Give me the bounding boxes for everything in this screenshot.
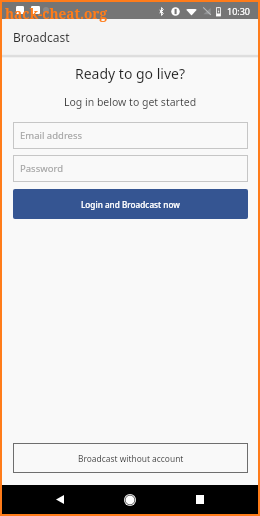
staticText: 10:30 (227, 5, 251, 17)
button[interactable]: Password (13, 155, 248, 182)
staticText: Password (20, 162, 63, 175)
staticText: hack-cheat.org (5, 4, 107, 23)
button[interactable]: Login and Broadcast now (13, 189, 248, 219)
staticText: Ready to go live? (2, 64, 258, 83)
staticText: Login and Broadcast now (81, 199, 180, 210)
button[interactable]: Email address (13, 122, 248, 149)
button[interactable]: Recent apps (180, 485, 220, 514)
button[interactable]: Back (40, 485, 80, 514)
staticText: Log in below to get started (2, 95, 258, 109)
button[interactable]: Broadcast without account (13, 443, 248, 473)
staticText: Broadcast (13, 29, 70, 45)
button[interactable]: Home (112, 485, 148, 514)
staticText: Email address (20, 129, 83, 142)
staticText: Broadcast without account (78, 453, 184, 464)
